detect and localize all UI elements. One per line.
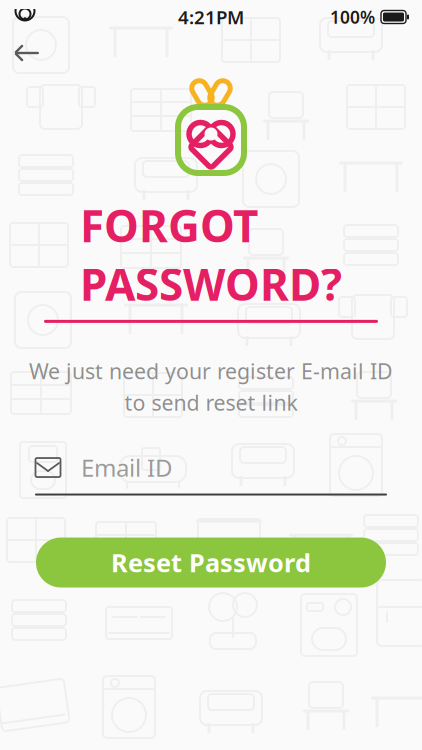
button[interactable]: Back [0,30,54,76]
button[interactable]: Reset Password [36,537,386,587]
staticText: 100% [330,5,375,28]
staticText: We just need your register E-mail ID [29,357,393,385]
staticText: 4:21PM [178,5,244,29]
staticText: Email ID [81,452,173,483]
staticText: FORGOT PASSWORD? [80,196,342,313]
staticText: to send reset link [124,388,297,416]
staticText: Reset Password [111,546,311,579]
